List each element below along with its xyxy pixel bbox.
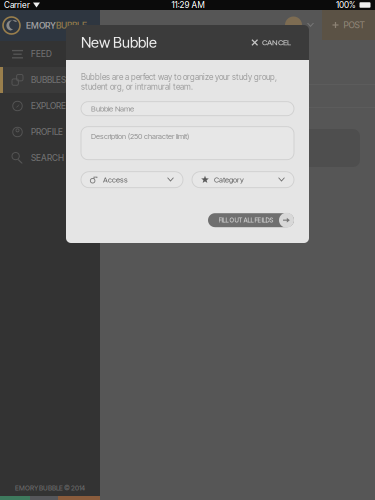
staticText: 100% xyxy=(336,0,356,10)
button[interactable]: Bubble Name xyxy=(81,102,294,116)
staticText: FEED xyxy=(31,49,52,59)
button[interactable]: CANCEL xyxy=(248,33,294,51)
staticText: CANCEL xyxy=(262,38,291,47)
staticText: Bubble Name xyxy=(91,104,134,113)
staticText: BUBBLES xyxy=(31,75,66,85)
button[interactable]: SEARCH xyxy=(0,145,100,171)
staticText: Category xyxy=(214,175,244,184)
staticText: EMORY xyxy=(26,20,56,31)
staticText: FILL OUT ALL FEILDS xyxy=(218,216,273,224)
button[interactable]: POST xyxy=(322,10,375,40)
staticText: POST xyxy=(343,20,364,30)
staticText: EXPLORE xyxy=(31,101,66,111)
button[interactable]: Description (250 character limit) xyxy=(81,127,294,160)
button[interactable]: BUBBLES xyxy=(0,67,100,93)
staticText: PROFILE xyxy=(31,127,63,137)
staticText: EMORY BUBBLE © 2014 xyxy=(15,484,85,492)
staticText: Carrier xyxy=(4,0,30,10)
staticText: Access xyxy=(103,175,128,184)
button[interactable]: FILL OUT ALL FEILDS xyxy=(208,213,294,228)
staticText: SEARCH xyxy=(31,153,64,163)
button[interactable]: FEED xyxy=(0,41,100,67)
staticText: Bubbles are a perfect way to organize yo… xyxy=(81,72,277,92)
button[interactable]: EXPLORE xyxy=(0,93,100,119)
staticText: New Bubble xyxy=(81,34,157,51)
staticText: BUBBLE xyxy=(56,20,87,31)
button[interactable]: PROFILE xyxy=(0,119,100,145)
staticText: Description (250 character limit) xyxy=(91,132,189,141)
button[interactable]: Access xyxy=(81,172,183,188)
staticText: 11:29 AM xyxy=(171,0,204,10)
button[interactable]: Category xyxy=(192,172,294,188)
